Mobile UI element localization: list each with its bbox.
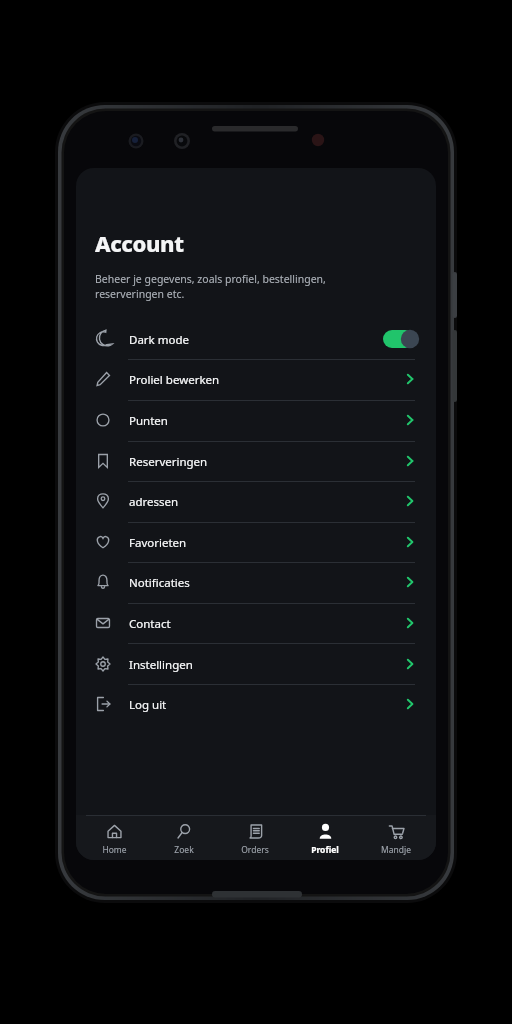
staticText: Instellingen bbox=[129, 657, 193, 673]
staticText: Beheer je gegevens, zoals profiel, beste… bbox=[95, 272, 326, 301]
staticText: Zoek bbox=[174, 844, 194, 856]
button[interactable]: Dark mode bbox=[88, 319, 415, 360]
button[interactable]: Instellingen bbox=[88, 644, 415, 685]
button[interactable]: Zoek bbox=[154, 818, 214, 858]
staticText: Profiel bbox=[311, 844, 339, 856]
staticText: Account bbox=[95, 228, 184, 258]
button[interactable]: Orders bbox=[225, 818, 285, 858]
button[interactable]: Mandje bbox=[366, 818, 426, 858]
button[interactable]: Favorieten bbox=[88, 522, 415, 563]
button[interactable]: Profiel bbox=[295, 818, 355, 858]
staticText: Log uit bbox=[129, 697, 167, 713]
button[interactable]: adressen bbox=[88, 481, 415, 522]
button[interactable]: Contact bbox=[88, 603, 415, 644]
button[interactable]: Proliel bewerken bbox=[88, 359, 415, 400]
staticText: adressen bbox=[129, 494, 179, 510]
button[interactable]: Log uit bbox=[88, 684, 415, 725]
staticText: Proliel bewerken bbox=[129, 372, 220, 388]
staticText: Punten bbox=[129, 413, 168, 429]
staticText: Contact bbox=[129, 616, 171, 632]
button[interactable]: Reserveringen bbox=[88, 441, 415, 482]
button[interactable]: Punten bbox=[88, 400, 415, 441]
staticText: Mandje bbox=[381, 844, 411, 856]
staticText: Notificaties bbox=[129, 575, 190, 591]
staticText: Reserveringen bbox=[129, 454, 208, 470]
staticText: Favorieten bbox=[129, 535, 187, 551]
staticText: Home bbox=[102, 844, 127, 856]
staticText: Dark mode bbox=[129, 332, 189, 348]
button[interactable]: Notificaties bbox=[88, 562, 415, 603]
staticText: Orders bbox=[241, 844, 269, 856]
button[interactable]: Home bbox=[84, 818, 144, 858]
